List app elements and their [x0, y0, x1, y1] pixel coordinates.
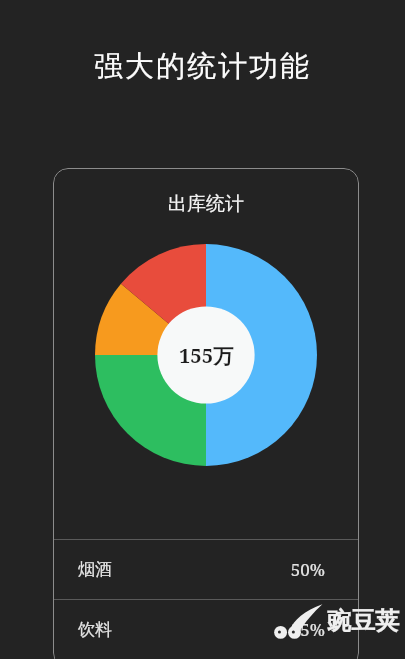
staticText: 出库统计: [168, 192, 244, 216]
button[interactable]: 烟酒: [53, 540, 359, 599]
staticText: 155万: [179, 342, 233, 369]
staticText: 50%: [290, 558, 325, 581]
button[interactable]: 饮料: [53, 600, 359, 659]
staticText: 烟酒: [78, 559, 112, 580]
staticText: 饮料: [78, 619, 112, 640]
staticText: 豌豆荚: [327, 606, 399, 636]
button[interactable]: 155万: [95, 244, 317, 466]
staticText: 25%: [290, 618, 325, 641]
staticText: 强大的统计功能: [0, 48, 405, 85]
